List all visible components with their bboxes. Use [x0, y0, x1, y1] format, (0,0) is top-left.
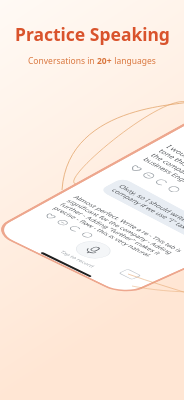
staticText: Tap to record — [58, 250, 97, 269]
staticText: 20+ — [97, 55, 112, 67]
staticText: I would suggest using a more formal tone… — [141, 143, 184, 225]
staticText: Conversations in — [28, 55, 97, 67]
staticText: Okay, so I should write formally for the… — [109, 183, 184, 249]
staticText: languages — [112, 55, 156, 67]
staticText: Practice Speaking — [15, 22, 170, 46]
staticText: Almost perfect. Write a re - This tab is… — [51, 194, 184, 266]
